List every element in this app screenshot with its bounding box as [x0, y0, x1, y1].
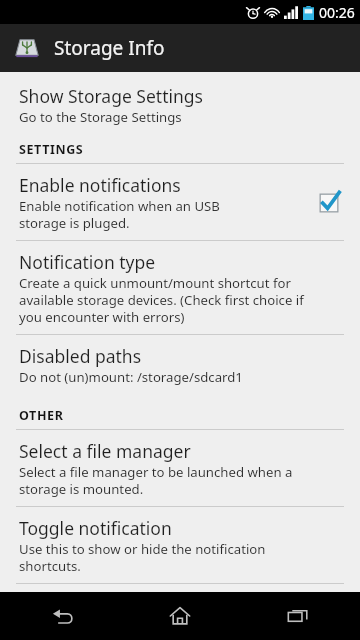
- button[interactable]: Select a file manager: [0, 430, 360, 506]
- staticText: Select a file manager: [19, 439, 191, 463]
- staticText: OTHER: [19, 407, 64, 424]
- staticText: Show Storage Settings: [19, 84, 203, 108]
- staticText: Notification type: [19, 250, 156, 274]
- staticText: Enable notification when an USB storage …: [19, 197, 220, 232]
- staticText: Select a file manager to be launched whe…: [19, 463, 293, 498]
- button[interactable]: Toggle notification: [0, 507, 360, 583]
- staticText: Enable notifications: [19, 173, 181, 197]
- button[interactable]: Back: [8, 592, 118, 640]
- button[interactable]: Home: [125, 592, 235, 640]
- staticText: SETTINGS: [19, 141, 84, 158]
- button[interactable]: Enable notifications: [0, 164, 360, 240]
- staticText: Go to the Storage Settings: [19, 108, 182, 126]
- button[interactable]: Recent apps: [243, 592, 353, 640]
- button[interactable]: Disabled paths: [0, 335, 360, 394]
- button[interactable]: Enable notifications checkbox: [311, 185, 347, 221]
- button[interactable]: Show Storage Settings: [0, 82, 360, 128]
- button[interactable]: Notification type: [0, 241, 360, 334]
- staticText: Disabled paths: [19, 344, 142, 368]
- staticText: Toggle notification: [19, 516, 172, 540]
- staticText: 00:26: [319, 3, 355, 22]
- staticText: Do not (un)mount: /storage/sdcard1: [19, 368, 243, 386]
- staticText: Storage Info: [54, 35, 165, 61]
- staticText: Create a quick unmount/mount shortcut fo…: [19, 274, 304, 326]
- staticText: Use this to show or hide the notificatio…: [19, 540, 266, 575]
